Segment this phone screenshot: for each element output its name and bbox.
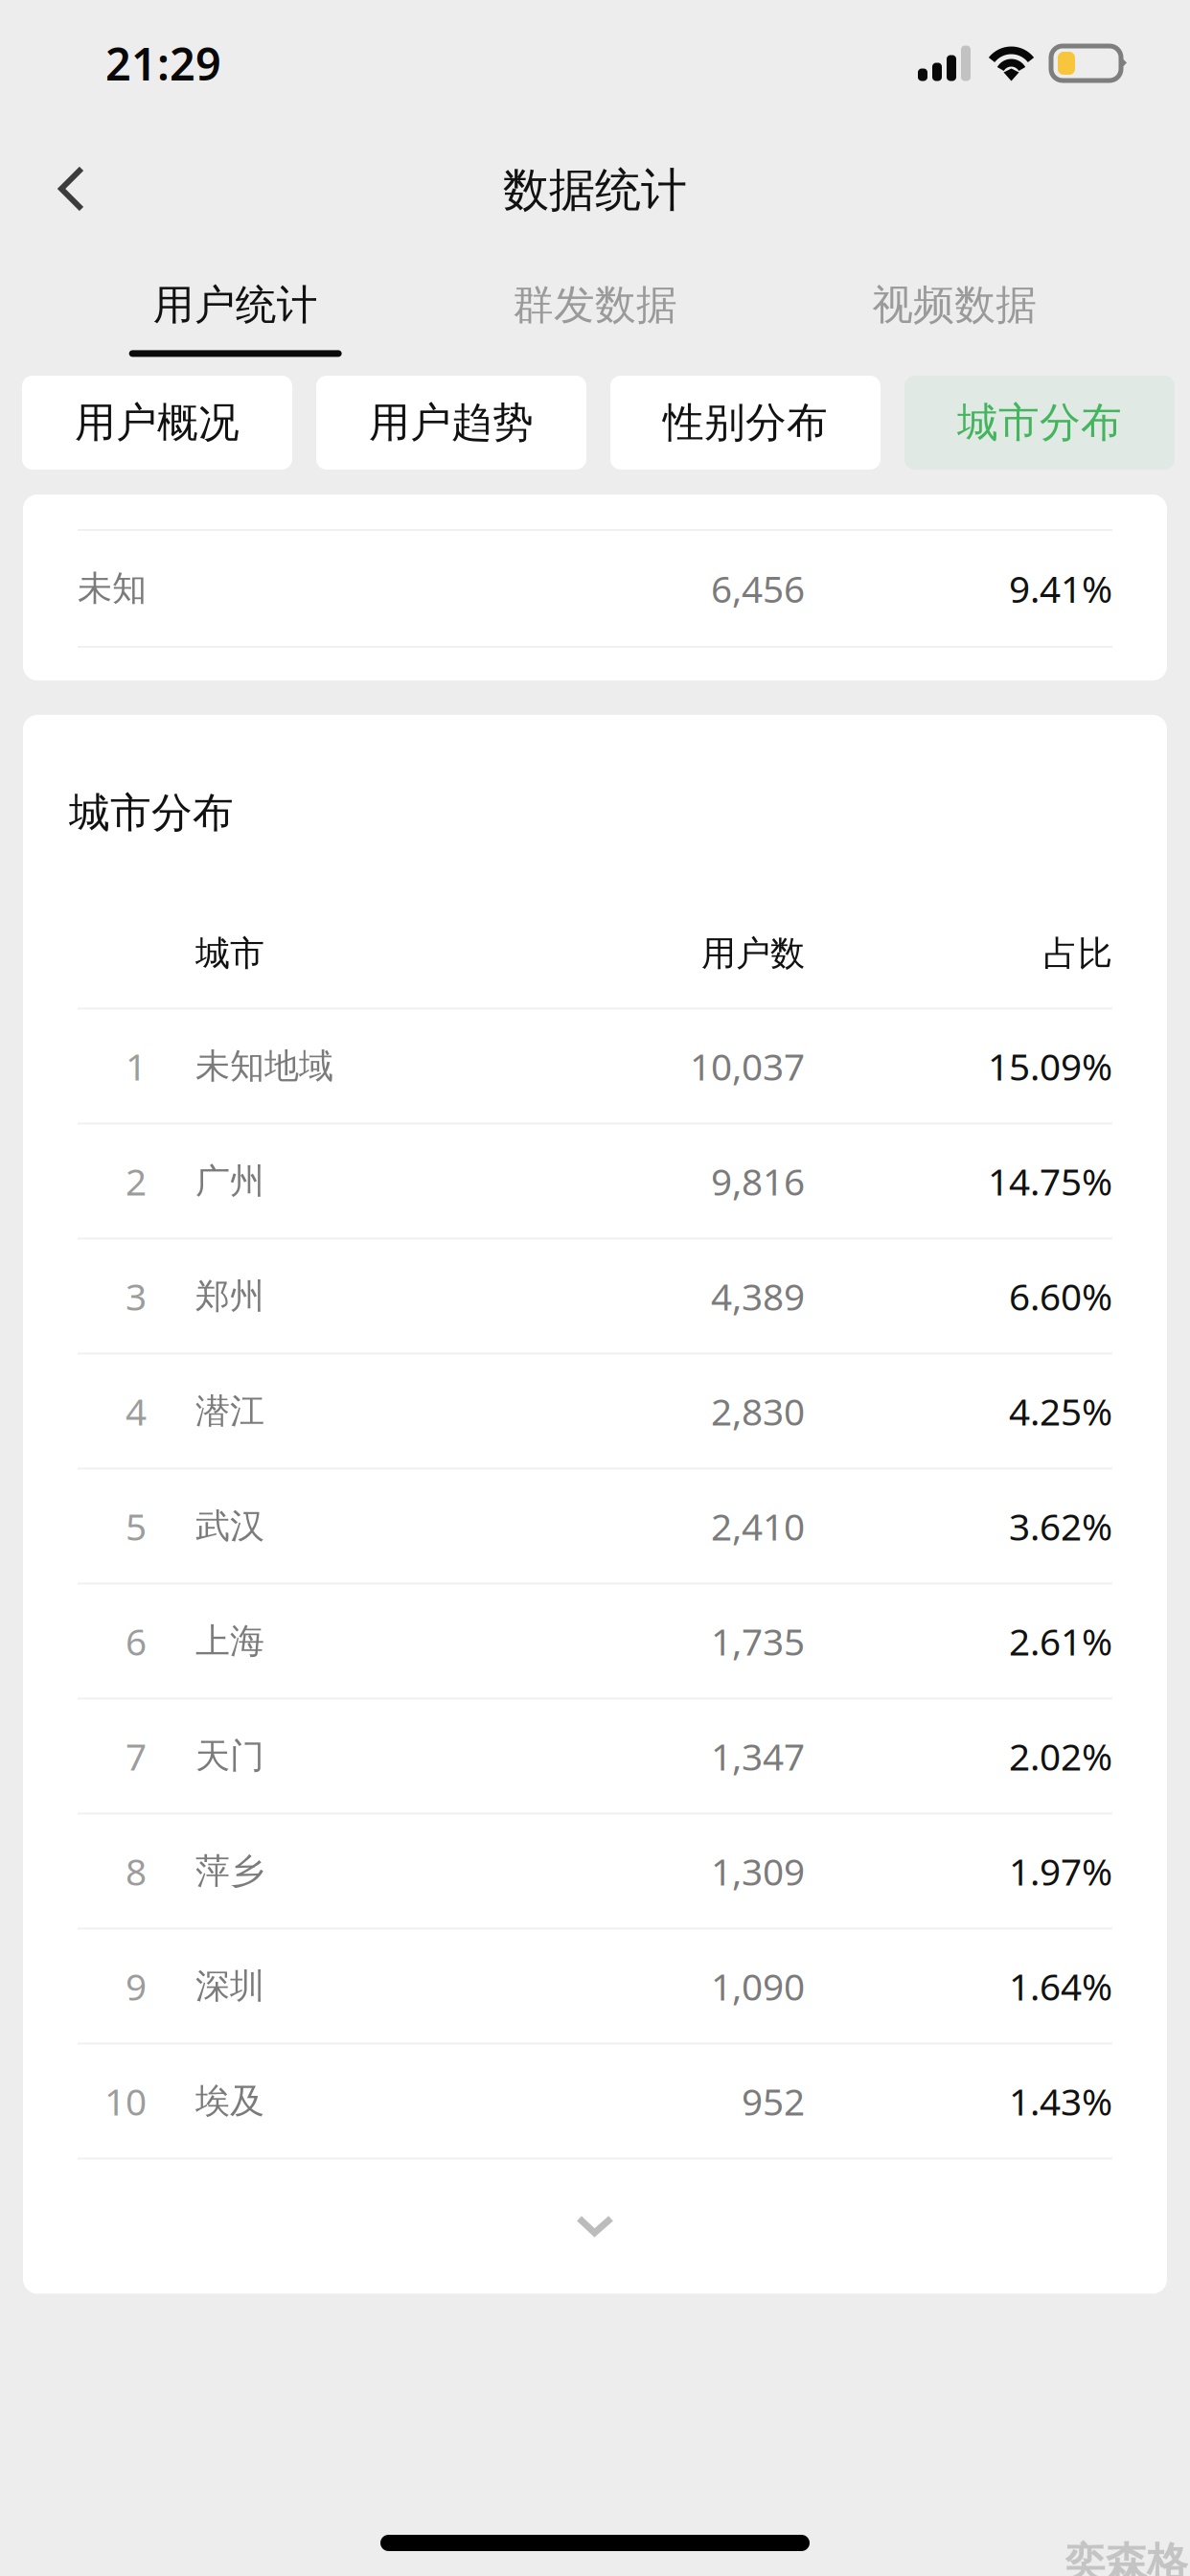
staticText: 2,410 xyxy=(711,1501,805,1551)
staticText: 21:29 xyxy=(105,34,221,93)
staticText: 埃及 xyxy=(195,2080,264,2122)
staticText: 城市分布 xyxy=(69,788,234,838)
staticText: 2.61% xyxy=(1009,1616,1112,1666)
staticText: 群发数据 xyxy=(513,280,677,330)
staticText: 视频数据 xyxy=(872,280,1037,330)
staticText: 8 xyxy=(126,1846,147,1896)
staticText: 4,389 xyxy=(711,1271,805,1321)
staticText: 5 xyxy=(126,1501,147,1551)
button[interactable]: 视频数据 xyxy=(775,240,1134,376)
staticText: 占比 xyxy=(1043,932,1112,975)
staticText: 1,090 xyxy=(711,1961,805,2011)
staticText: 广州 xyxy=(195,1160,264,1202)
button[interactable]: 群发数据 xyxy=(415,240,775,376)
staticText: 性别分布 xyxy=(663,398,828,448)
staticText: 14.75% xyxy=(988,1156,1112,1206)
button[interactable]: 性别分布 xyxy=(610,376,881,470)
staticText: 4.25% xyxy=(1009,1386,1112,1436)
staticText: 952 xyxy=(742,2076,805,2126)
staticText: 用户趋势 xyxy=(369,398,534,448)
staticText: 奕森格 xyxy=(1064,2538,1188,2576)
staticText: 用户统计 xyxy=(153,280,318,330)
staticText: 未知 xyxy=(78,567,147,610)
staticText: 2,830 xyxy=(711,1386,805,1436)
staticText: 2 xyxy=(126,1156,147,1206)
staticText: 9,816 xyxy=(711,1156,805,1206)
staticText: 6.60% xyxy=(1009,1271,1112,1321)
button[interactable]: Back xyxy=(0,126,126,240)
button[interactable]: 用户趋势 xyxy=(316,376,586,470)
staticText: 用户概况 xyxy=(75,398,240,448)
staticText: 1.97% xyxy=(1009,1846,1112,1896)
staticText: 10,037 xyxy=(690,1041,805,1091)
button[interactable]: 用户统计 xyxy=(56,240,415,376)
button[interactable]: 用户概况 xyxy=(22,376,292,470)
staticText: 2.02% xyxy=(1009,1731,1112,1781)
staticText: 15.09% xyxy=(988,1041,1112,1091)
staticText: 9 xyxy=(126,1961,147,2011)
staticText: 深圳 xyxy=(195,1965,264,2007)
staticText: 1,347 xyxy=(711,1731,805,1781)
staticText: 1,735 xyxy=(711,1616,805,1666)
staticText: 9.41% xyxy=(1009,564,1112,613)
staticText: 1.64% xyxy=(1009,1961,1112,2011)
staticText: 数据统计 xyxy=(503,162,687,218)
staticText: 10 xyxy=(104,2076,147,2126)
staticText: 潜江 xyxy=(195,1390,264,1432)
staticText: 未知地域 xyxy=(195,1045,333,1087)
staticText: 天门 xyxy=(195,1735,264,1777)
staticText: 1.43% xyxy=(1009,2076,1112,2126)
staticText: 6 xyxy=(126,1616,147,1666)
staticText: 用户数 xyxy=(701,932,805,975)
staticText: 6,456 xyxy=(711,564,805,613)
staticText: 7 xyxy=(126,1731,147,1781)
staticText: 城市分布 xyxy=(957,398,1122,448)
staticText: 3.62% xyxy=(1009,1501,1112,1551)
staticText: 3 xyxy=(126,1271,147,1321)
staticText: 1,309 xyxy=(711,1846,805,1896)
staticText: 上海 xyxy=(195,1620,264,1662)
staticText: 4 xyxy=(126,1386,147,1436)
staticText: 郑州 xyxy=(195,1275,264,1317)
staticText: 1 xyxy=(126,1041,147,1091)
staticText: 城市 xyxy=(195,932,264,975)
staticText: 萍乡 xyxy=(195,1850,264,1892)
button[interactable]: 城市分布 xyxy=(904,376,1175,470)
staticText: 武汉 xyxy=(195,1505,264,1547)
